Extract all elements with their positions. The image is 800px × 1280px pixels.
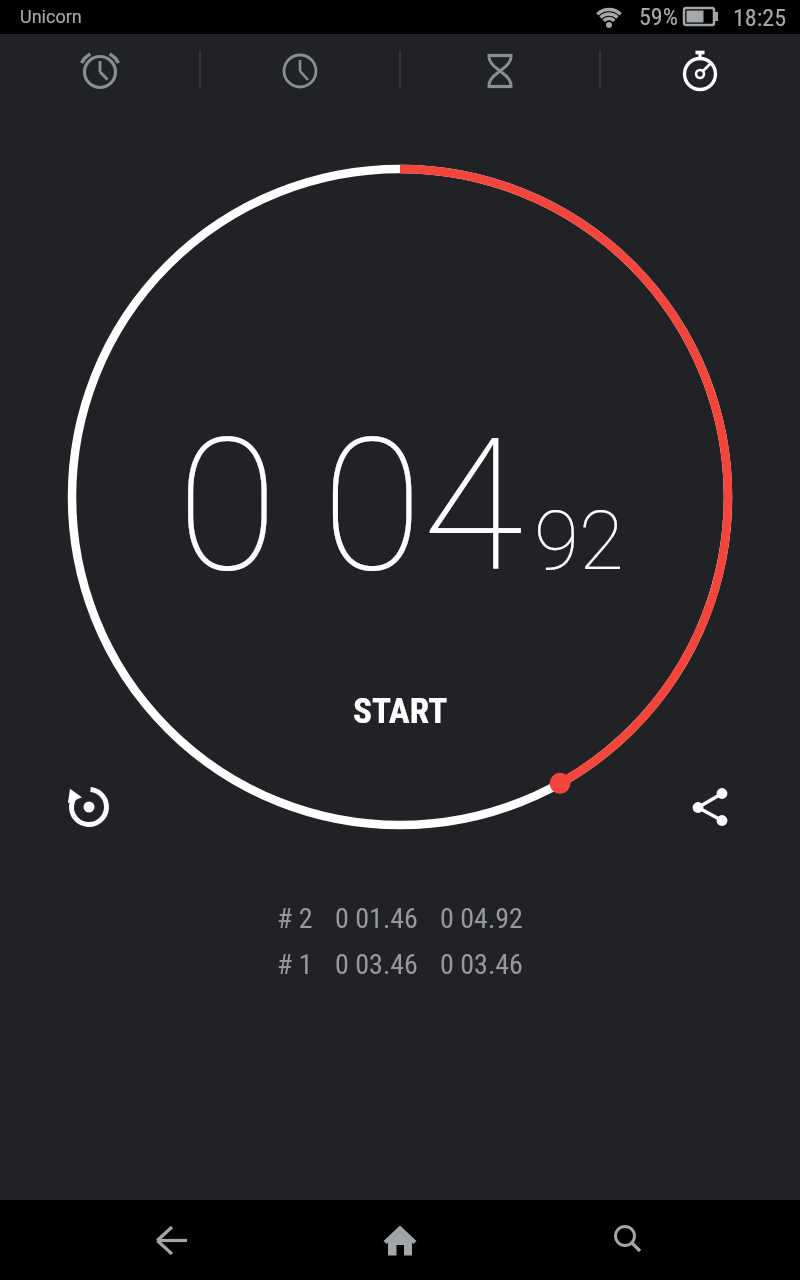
button[interactable] (682, 779, 738, 835)
staticText: 59% (639, 3, 678, 31)
button[interactable] (61, 779, 117, 835)
staticText: START (353, 691, 448, 732)
button[interactable] (200, 34, 400, 108)
staticText: 92 (534, 493, 624, 589)
button[interactable] (400, 34, 600, 108)
button[interactable]: START (353, 691, 448, 732)
staticText: 0 01.46 (335, 902, 418, 935)
button[interactable] (598, 1210, 658, 1270)
button[interactable] (600, 34, 800, 108)
staticText: 0 04.92 (440, 902, 523, 935)
button[interactable] (142, 1210, 202, 1270)
staticText: 0 04 (177, 398, 524, 614)
button[interactable] (370, 1210, 430, 1270)
button[interactable] (0, 34, 200, 108)
staticText: # 2 (277, 902, 313, 935)
staticText: # 1 (277, 948, 313, 981)
staticText: 18:25 (733, 4, 786, 32)
staticText: Unicorn (20, 6, 82, 27)
staticText: 0 03.46 (440, 948, 523, 981)
staticText: 0 03.46 (335, 948, 418, 981)
